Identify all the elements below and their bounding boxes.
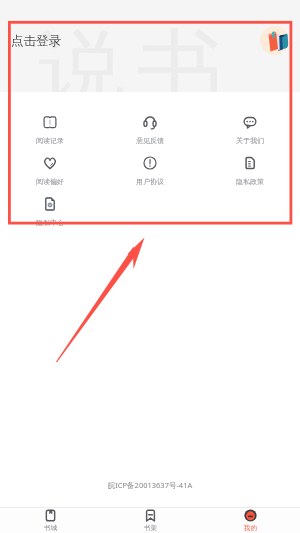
- staticText: 书城: [44, 524, 57, 532]
- staticText: 意见反馈: [136, 136, 164, 145]
- staticText: 书架: [144, 524, 157, 532]
- button[interactable]: 隐私政策: [200, 156, 300, 186]
- button[interactable]: 关于我们: [200, 115, 300, 145]
- staticText: 用户协议: [136, 177, 164, 186]
- button[interactable]: 点击登录: [11, 33, 61, 49]
- staticText: 阅读偏好: [36, 177, 64, 186]
- button[interactable]: 意见反馈: [100, 115, 200, 145]
- staticText: 隐私中心: [36, 218, 64, 227]
- button[interactable]: Profile avatar: [260, 26, 289, 55]
- button[interactable]: 阅读记录: [0, 115, 100, 145]
- button[interactable]: 阅读偏好: [0, 156, 100, 186]
- staticText: 皖ICP备20013637号-41A: [0, 480, 300, 490]
- button[interactable]: 书城: [0, 508, 100, 533]
- staticText: 说书: [33, 16, 229, 92]
- button[interactable]: 我的: [200, 508, 300, 533]
- staticText: 我的: [244, 524, 257, 532]
- button[interactable]: 隐私中心: [0, 197, 100, 227]
- staticText: 隐私政策: [236, 177, 264, 186]
- staticText: 阅读记录: [36, 136, 64, 145]
- staticText: 关于我们: [236, 136, 264, 145]
- button[interactable]: 用户协议: [100, 156, 200, 186]
- button[interactable]: 书架: [100, 508, 200, 533]
